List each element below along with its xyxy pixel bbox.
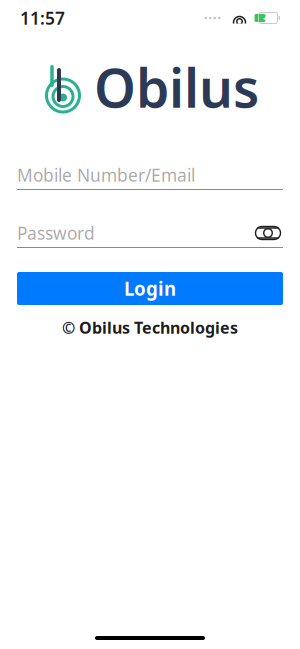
button[interactable]: Password xyxy=(17,219,283,248)
button[interactable]: Login xyxy=(17,272,283,305)
staticText: 11:57 xyxy=(20,6,65,29)
staticText: Obilus xyxy=(94,52,259,122)
staticText: © Obilus Technologies xyxy=(62,317,238,338)
staticText: + xyxy=(263,11,269,25)
button[interactable]: Mobile Number/Email xyxy=(17,161,283,190)
staticText: Login xyxy=(124,276,176,301)
staticText: Password xyxy=(17,221,95,244)
staticText: Mobile Number/Email xyxy=(17,163,195,186)
